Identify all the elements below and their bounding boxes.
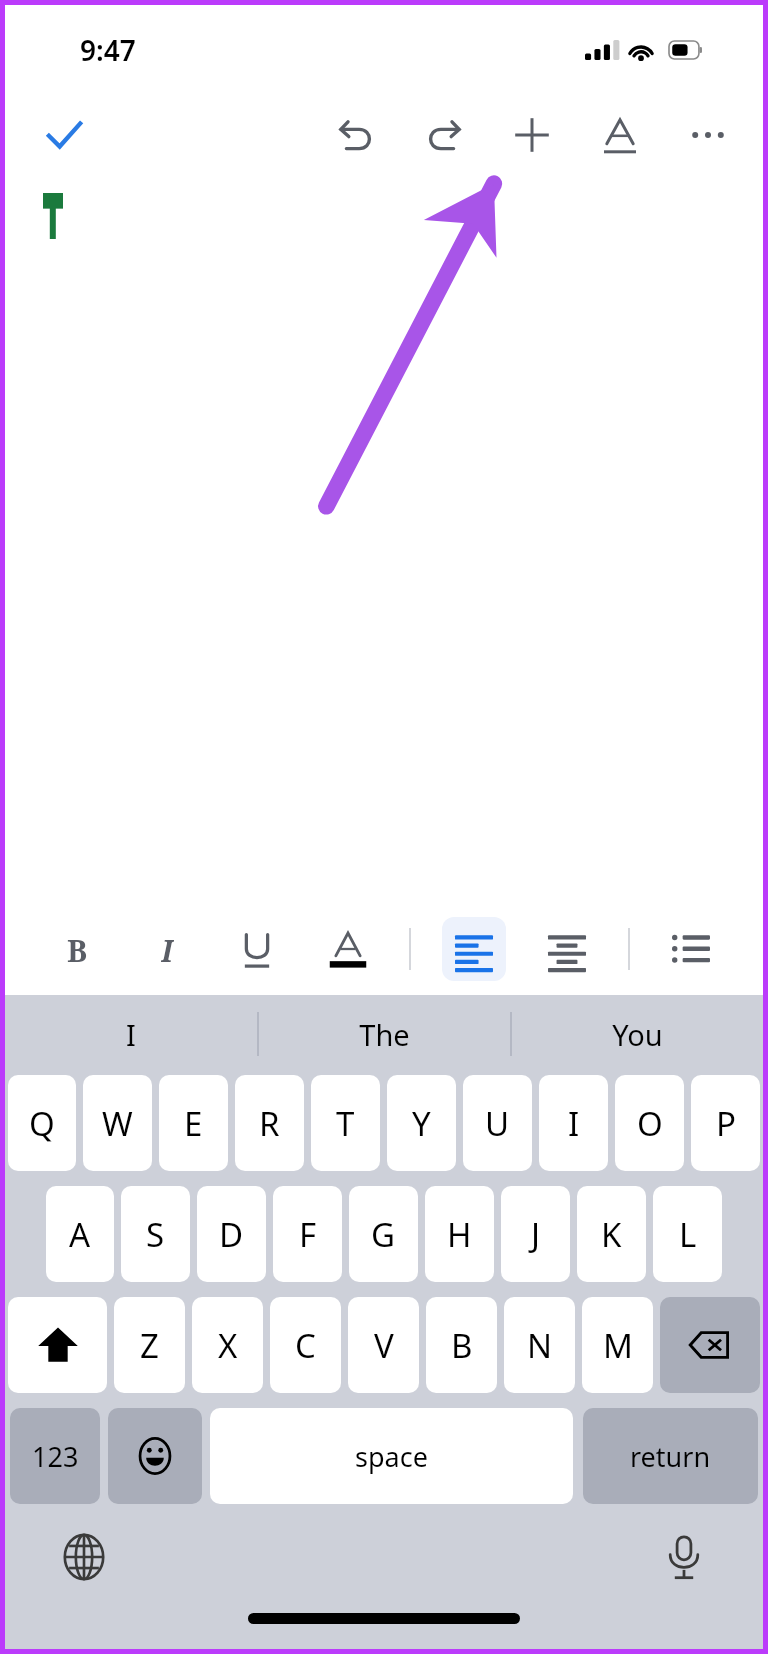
button[interactable]: J [501,1186,570,1282]
button[interactable]: 123 [10,1408,100,1504]
staticText: F [299,1212,317,1257]
staticText: T [336,1101,355,1146]
button[interactable]: You [512,995,763,1073]
button[interactable]: Redo [413,104,475,166]
button[interactable]: Y [387,1075,456,1171]
staticText: E [184,1101,203,1146]
button[interactable]: Z [114,1297,185,1393]
staticText: I [126,1015,136,1054]
staticText: space [355,1438,428,1475]
button[interactable]: S [121,1186,190,1282]
button[interactable]: A [46,1186,114,1282]
button[interactable]: F [273,1186,342,1282]
staticText: return [630,1438,711,1475]
button[interactable]: L [653,1186,722,1282]
button[interactable]: H [425,1186,494,1282]
button[interactable]: E [159,1075,228,1171]
button[interactable]: W [83,1075,152,1171]
button[interactable]: return [583,1408,758,1504]
button[interactable]: Align center [537,919,597,979]
staticText: M [603,1323,633,1368]
button[interactable]: Emoji [108,1408,202,1504]
staticText: 123 [32,1438,79,1475]
staticText: Z [140,1323,159,1368]
button[interactable]: Insert [501,104,563,166]
staticText: L [679,1212,697,1257]
staticText: R [259,1101,280,1146]
button[interactable]: More options [677,104,739,166]
button[interactable]: The [259,995,510,1073]
staticText: S [146,1212,165,1257]
button[interactable]: U [463,1075,532,1171]
button[interactable]: T [311,1075,380,1171]
staticText: V [374,1323,394,1368]
staticText: K [601,1212,622,1257]
staticText: The [359,1015,410,1054]
button[interactable]: O [615,1075,684,1171]
staticText: B [67,930,88,968]
button[interactable]: space [210,1408,573,1504]
staticText: X [218,1323,238,1368]
staticText: G [371,1212,396,1257]
button[interactable]: P [691,1075,760,1171]
button[interactable]: Align left [442,917,506,981]
staticText: B [451,1323,473,1368]
staticText: C [295,1323,316,1368]
button[interactable]: Bulleted list [661,919,721,979]
button[interactable]: V [348,1297,419,1393]
staticText: A [69,1212,91,1257]
button[interactable]: G [349,1186,418,1282]
button[interactable]: Shift [8,1297,107,1393]
staticText: W [102,1101,133,1146]
button[interactable]: M [582,1297,653,1393]
button[interactable]: Undo [325,104,387,166]
button[interactable]: Q [8,1075,76,1171]
button[interactable]: Change keyboard [55,1528,113,1586]
staticText: I [568,1101,580,1146]
staticText: O [637,1101,663,1146]
staticText: Q [29,1101,55,1146]
button[interactable]: Backspace [660,1297,760,1393]
button[interactable]: Text format [589,104,651,166]
staticText: You [612,1015,663,1054]
button[interactable]: I [5,995,257,1073]
staticText: U [485,1101,510,1146]
button[interactable]: R [235,1075,304,1171]
staticText: 9:47 [80,31,136,69]
button[interactable]: Italic [137,919,197,979]
staticText: P [716,1101,736,1146]
staticText: N [527,1323,553,1368]
staticText: I [161,930,174,968]
button[interactable]: Underline [227,919,287,979]
staticText: Y [412,1101,431,1146]
button[interactable]: Text color [318,919,378,979]
staticText: D [219,1212,244,1257]
staticText: J [531,1212,541,1257]
button[interactable]: Bold [47,919,107,979]
button[interactable]: K [577,1186,646,1282]
button[interactable]: C [270,1297,341,1393]
button[interactable]: N [504,1297,575,1393]
button[interactable]: B [426,1297,497,1393]
button[interactable]: D [197,1186,266,1282]
button[interactable]: Dictate [655,1528,713,1586]
button[interactable]: I [539,1075,608,1171]
button[interactable]: X [192,1297,263,1393]
button[interactable]: Done [33,104,95,166]
staticText: H [447,1212,472,1257]
